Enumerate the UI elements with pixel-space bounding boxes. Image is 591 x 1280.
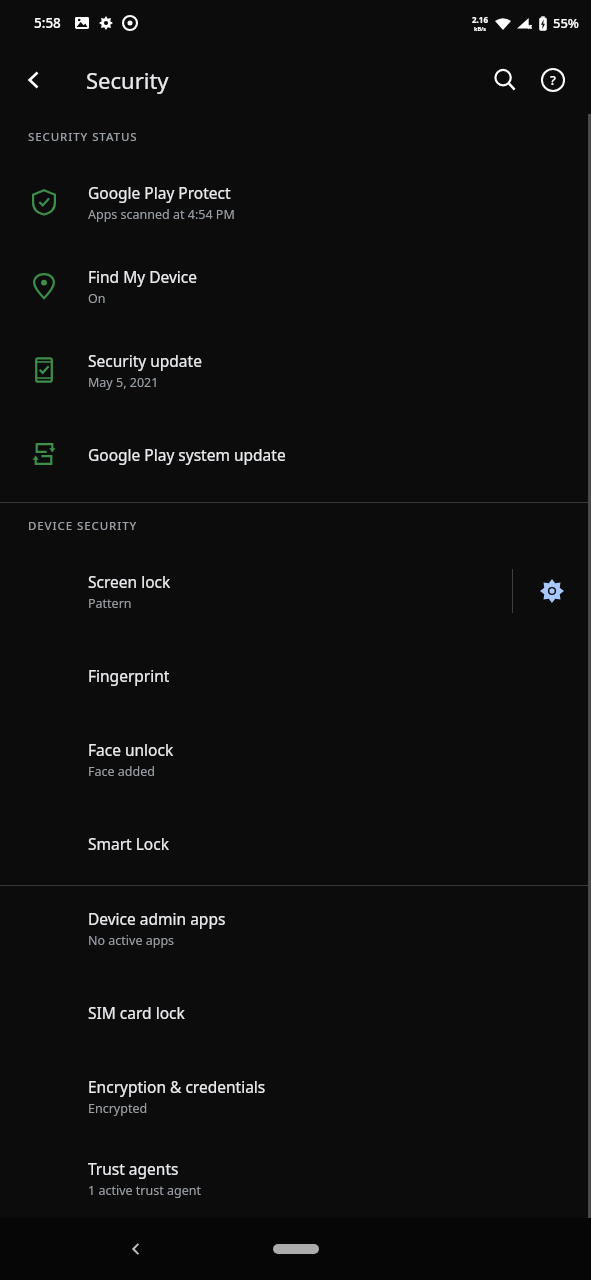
button[interactable]: Face unlock	[0, 717, 591, 801]
staticText: Security	[86, 65, 169, 95]
staticText: Face added	[88, 763, 155, 780]
button[interactable]: Find My Device	[0, 244, 591, 328]
staticText: Google Play system update	[88, 444, 286, 465]
button[interactable]: Fingerprint	[0, 633, 591, 717]
staticText: Face unlock	[88, 739, 174, 760]
staticText: 5:58	[34, 14, 61, 32]
button[interactable]: Help	[529, 56, 577, 104]
staticText: Screen lock	[88, 571, 171, 592]
staticText: Fingerprint	[88, 665, 170, 686]
button[interactable]: Google Play system update	[0, 412, 591, 496]
staticText: 55%	[553, 14, 579, 32]
button[interactable]: SIM card lock	[0, 970, 591, 1054]
staticText: kB/s	[474, 25, 487, 32]
staticText: Find My Device	[88, 266, 197, 287]
staticText: Trust agents	[88, 1158, 179, 1179]
button[interactable]: Encryption & credentials	[0, 1054, 591, 1138]
staticText: No active apps	[88, 932, 175, 949]
staticText: Device admin apps	[88, 908, 226, 929]
button[interactable]: Security update	[0, 328, 591, 412]
staticText: 2.16	[472, 14, 488, 25]
staticText: Pattern	[88, 595, 132, 612]
staticText: ?	[550, 71, 556, 89]
staticText: SIM card lock	[88, 1002, 185, 1023]
staticText: DEVICE SECURITY	[28, 518, 138, 534]
button[interactable]: Search	[481, 56, 529, 104]
staticText: May 5, 2021	[88, 374, 159, 391]
staticText: Encrypted	[88, 1100, 148, 1117]
staticText: Smart Lock	[88, 833, 169, 854]
button[interactable]: Back	[114, 1227, 158, 1271]
button[interactable]: Google Play Protect	[0, 160, 591, 244]
button[interactable]: Screen lock settings	[513, 549, 591, 633]
button[interactable]: Screen lock	[0, 549, 591, 633]
button[interactable]: Device admin apps	[0, 886, 591, 970]
button[interactable]: Back	[10, 56, 58, 104]
staticText: On	[88, 290, 106, 307]
button[interactable]: Trust agents	[0, 1138, 591, 1218]
staticText: Encryption & credentials	[88, 1076, 266, 1097]
staticText: Apps scanned at 4:54 PM	[88, 206, 235, 223]
staticText: Security update	[88, 350, 202, 371]
button[interactable]: Home	[273, 1244, 319, 1254]
button[interactable]: Smart Lock	[0, 801, 591, 885]
staticText: 1 active trust agent	[88, 1182, 201, 1199]
staticText: Google Play Protect	[88, 182, 231, 203]
staticText: SECURITY STATUS	[28, 129, 138, 145]
